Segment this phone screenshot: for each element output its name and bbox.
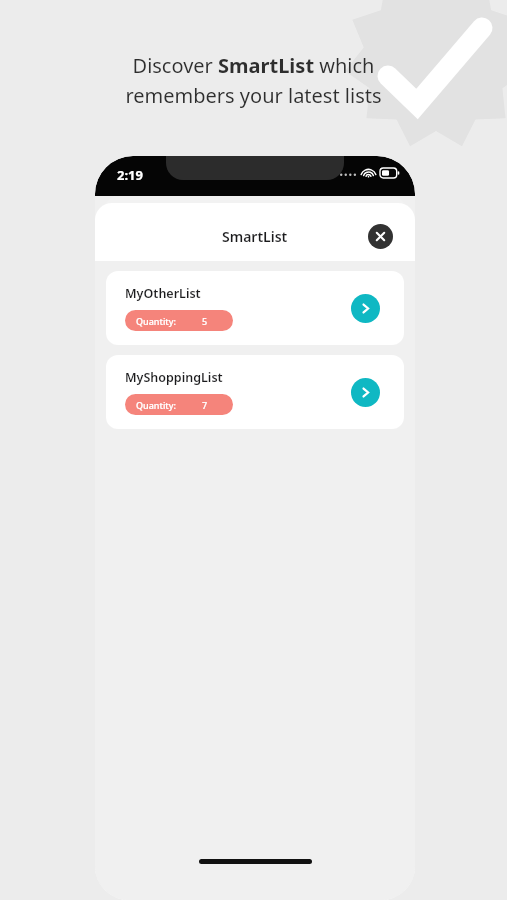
button[interactable]: Open MyOtherList bbox=[351, 294, 380, 323]
staticText: 5 bbox=[202, 315, 208, 327]
staticText: Discover SmartList which remembers your … bbox=[16, 52, 491, 109]
button[interactable]: MyShoppingList bbox=[106, 355, 404, 429]
button[interactable]: MyOtherList bbox=[106, 271, 404, 345]
staticText: Quantity: bbox=[136, 315, 177, 327]
staticText: 7 bbox=[202, 399, 208, 411]
staticText: Quantity: bbox=[136, 399, 177, 411]
button[interactable]: Close bbox=[368, 224, 393, 249]
staticText: MyShoppingList bbox=[125, 369, 223, 386]
staticText: SmartList bbox=[222, 227, 288, 246]
button[interactable]: Open MyShoppingList bbox=[351, 378, 380, 407]
staticText: 2:19 bbox=[117, 166, 143, 184]
staticText: MyOtherList bbox=[125, 285, 201, 302]
